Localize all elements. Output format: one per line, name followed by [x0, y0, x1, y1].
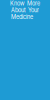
staticText: Know More	[10, 0, 40, 7]
staticText: About Your Medicine	[11, 7, 39, 20]
